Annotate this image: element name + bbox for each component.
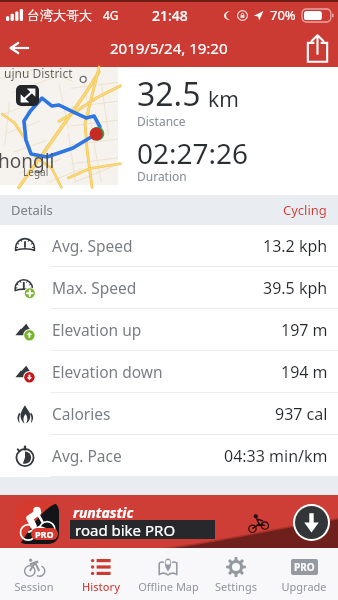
staticText: 937 cal [275, 403, 328, 425]
staticText: km [208, 85, 239, 114]
staticText: Legal [23, 165, 49, 179]
staticText: 21:48 [152, 6, 188, 25]
staticText: Max. Speed [52, 277, 137, 298]
staticText: Elevation down [52, 361, 163, 382]
staticText: Calories [52, 403, 111, 424]
button[interactable]: Download app [293, 504, 330, 541]
staticText: Distance [137, 113, 186, 129]
button[interactable]: Share [301, 32, 333, 64]
button[interactable]: History [67, 548, 134, 600]
button[interactable]: Max. Speed [0, 267, 338, 309]
button[interactable]: Offline Map [134, 548, 202, 600]
button[interactable]: Elevation down [0, 351, 338, 393]
staticText: Elevation up [52, 319, 142, 340]
staticText: 02:27:26 [137, 134, 249, 172]
button[interactable]: Session [0, 548, 67, 600]
staticText: road bike PRO [75, 520, 176, 539]
staticText: Details [11, 201, 53, 219]
staticText: Avg. Speed [52, 235, 133, 256]
staticText: Cycling [283, 201, 327, 219]
button[interactable]: Avg. Pace [0, 435, 338, 477]
staticText: Offline Map [138, 579, 199, 594]
staticText: 32.5 [137, 72, 201, 116]
button[interactable]: Route map [0, 67, 118, 185]
staticText: 70% [270, 6, 296, 24]
staticText: 04:33 min/km [224, 445, 328, 467]
button[interactable]: Avg. Speed [0, 225, 338, 267]
staticText: History [82, 579, 120, 594]
staticText: runtastic [73, 503, 134, 522]
button[interactable]: Expand map [16, 85, 39, 106]
staticText: Settings [215, 579, 257, 594]
button[interactable]: Runtastic road bike PRO advertisement [0, 495, 338, 548]
button[interactable]: Elevation up [0, 309, 338, 351]
staticText: ujnu District [4, 65, 73, 81]
staticText: hongli [0, 148, 55, 174]
staticText: Duration [137, 168, 187, 184]
staticText: 194 m [281, 361, 328, 383]
button[interactable]: Calories [0, 393, 338, 435]
staticText: Session [14, 579, 54, 594]
button[interactable]: Back [4, 33, 34, 63]
button[interactable]: Settings [202, 548, 270, 600]
staticText: 197 m [281, 319, 328, 341]
staticText: 13.2 kph [263, 235, 328, 257]
staticText: PRO [35, 528, 54, 540]
button[interactable]: PRO [270, 548, 338, 600]
staticText: 4G [103, 7, 119, 23]
staticText: Upgrade [281, 579, 327, 594]
staticText: PRO [294, 560, 315, 574]
staticText: Avg. Pace [52, 445, 122, 466]
staticText: 台湾大哥大 [27, 7, 92, 23]
staticText: 2019/5/24, 19:20 [110, 38, 228, 58]
staticText: 39.5 kph [263, 277, 328, 299]
